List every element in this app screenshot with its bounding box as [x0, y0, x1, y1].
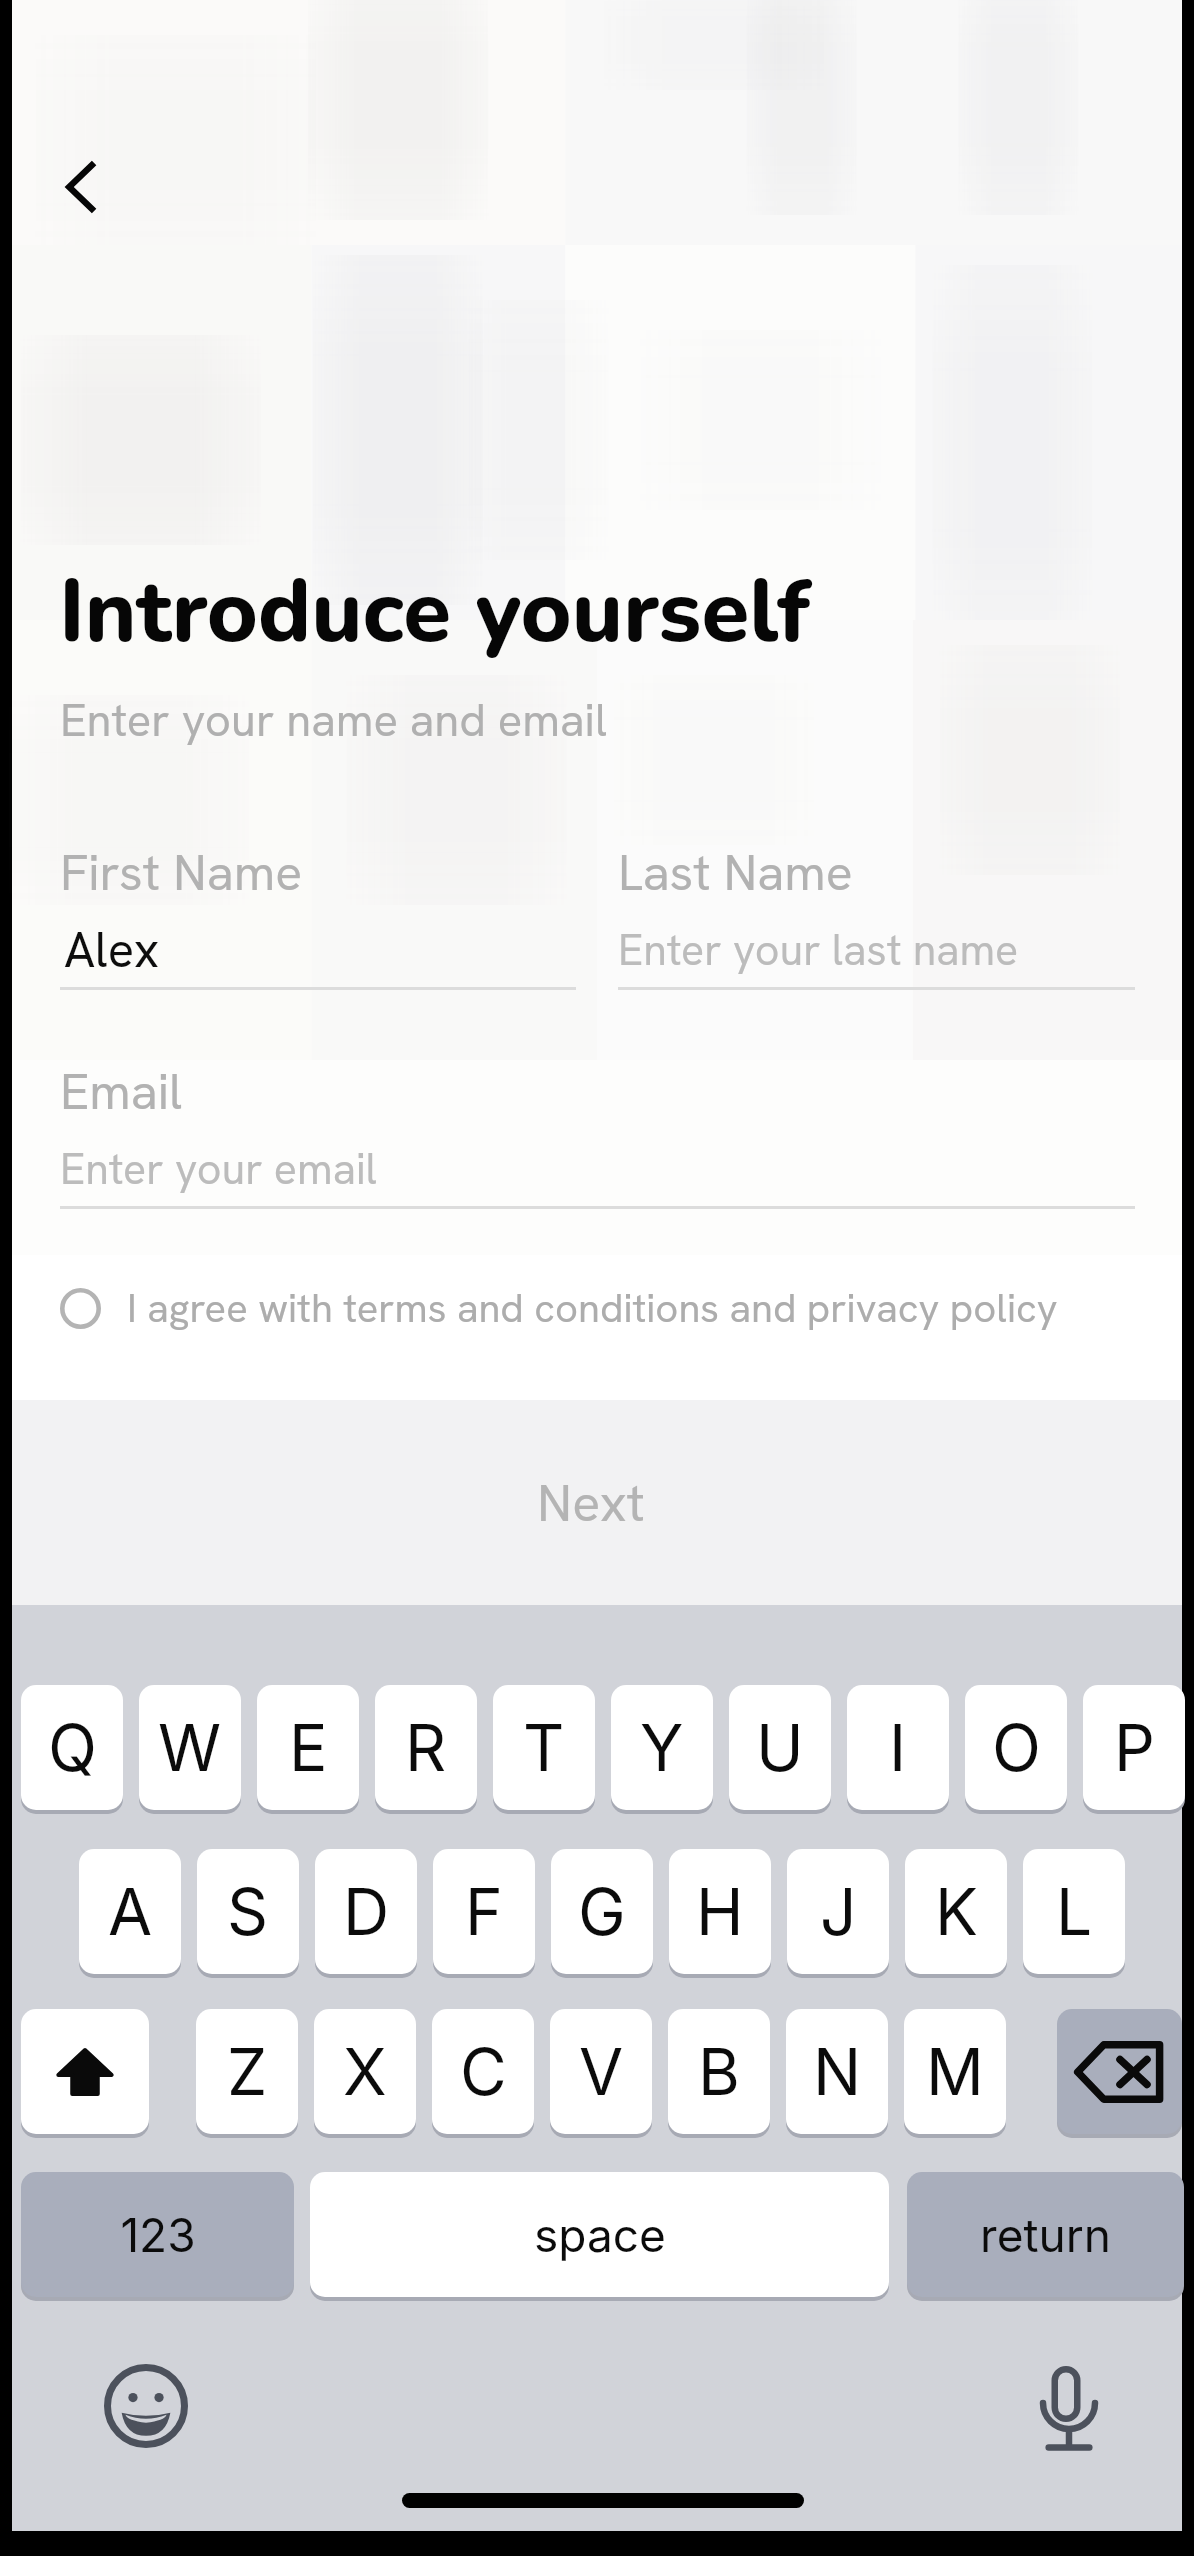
- button[interactable]: O: [965, 1685, 1067, 1814]
- staticText: T: [523, 1709, 565, 1786]
- button[interactable]: I: [847, 1685, 949, 1814]
- staticText: B: [698, 2033, 740, 2110]
- staticText: I: [889, 1709, 907, 1786]
- staticText: O: [992, 1709, 1041, 1786]
- staticText: H: [696, 1873, 744, 1950]
- staticText: Enter your last name: [618, 922, 1019, 978]
- staticText: R: [405, 1709, 447, 1786]
- button[interactable]: space: [310, 2172, 889, 2301]
- staticText: return: [980, 2207, 1111, 2263]
- staticText: L: [1056, 1873, 1093, 1950]
- button[interactable]: L: [1023, 1849, 1125, 1978]
- button[interactable]: W: [139, 1685, 241, 1814]
- staticText: G: [578, 1873, 626, 1950]
- button[interactable]: M: [904, 2009, 1006, 2138]
- staticText: N: [813, 2033, 862, 2110]
- staticText: V: [579, 2033, 624, 2110]
- staticText: U: [756, 1709, 804, 1786]
- staticText: Enter your name and email: [60, 690, 607, 749]
- staticText: Y: [640, 1709, 684, 1786]
- staticText: Q: [48, 1709, 97, 1786]
- button[interactable]: V: [550, 2009, 652, 2138]
- staticText: W: [158, 1709, 222, 1786]
- staticText: space: [534, 2207, 666, 2263]
- staticText: J: [820, 1873, 857, 1950]
- staticText: 123: [120, 2207, 196, 2263]
- button[interactable]: E: [257, 1685, 359, 1814]
- button[interactable]: K: [905, 1849, 1007, 1978]
- button[interactable]: A: [79, 1849, 181, 1978]
- staticText: M: [926, 2033, 984, 2110]
- button[interactable]: Shift: [21, 2009, 149, 2138]
- button[interactable]: P: [1083, 1685, 1185, 1814]
- staticText: E: [289, 1709, 328, 1786]
- button[interactable]: Y: [611, 1685, 713, 1814]
- button[interactable]: R: [375, 1685, 477, 1814]
- staticText: Next: [537, 1469, 645, 1537]
- button[interactable]: S: [197, 1849, 299, 1978]
- staticText: I agree with terms and conditions and pr…: [127, 1282, 1058, 1334]
- staticText: D: [343, 1873, 390, 1950]
- button[interactable]: G: [551, 1849, 653, 1978]
- button[interactable]: X: [314, 2009, 416, 2138]
- button[interactable]: J: [787, 1849, 889, 1978]
- button[interactable]: Q: [21, 1685, 123, 1814]
- staticText: S: [227, 1873, 269, 1950]
- staticText: K: [935, 1873, 978, 1950]
- staticText: First Name: [60, 840, 303, 905]
- staticText: Introduce yourself: [59, 553, 811, 672]
- staticText: F: [465, 1873, 503, 1950]
- button[interactable]: Back: [25, 132, 135, 242]
- button[interactable]: C: [432, 2009, 534, 2138]
- staticText: Email: [60, 1059, 183, 1124]
- button[interactable]: I agree with terms and conditions and pr…: [42, 1262, 1132, 1354]
- staticText: A: [108, 1873, 153, 1950]
- button[interactable]: Emoji keyboard: [79, 2339, 213, 2473]
- staticText: Last Name: [618, 840, 853, 905]
- staticText: C: [460, 2033, 507, 2110]
- staticText: Enter your email: [60, 1141, 377, 1197]
- staticText: Alex: [64, 918, 160, 982]
- button[interactable]: F: [433, 1849, 535, 1978]
- button[interactable]: Backspace: [1057, 2009, 1182, 2138]
- button[interactable]: Dictation: [1002, 2341, 1136, 2475]
- button[interactable]: Z: [196, 2009, 298, 2138]
- button[interactable]: T: [493, 1685, 595, 1814]
- button[interactable]: D: [315, 1849, 417, 1978]
- staticText: X: [343, 2033, 387, 2110]
- button[interactable]: B: [668, 2009, 770, 2138]
- button[interactable]: return: [907, 2172, 1184, 2301]
- staticText: Z: [227, 2033, 268, 2110]
- button[interactable]: N: [786, 2009, 888, 2138]
- staticText: P: [1114, 1709, 1155, 1786]
- button[interactable]: H: [669, 1849, 771, 1978]
- button[interactable]: U: [729, 1685, 831, 1814]
- button[interactable]: Next: [12, 1400, 1182, 1605]
- button[interactable]: 123: [21, 2172, 294, 2301]
